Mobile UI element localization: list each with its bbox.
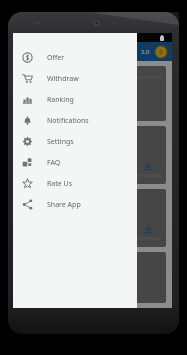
staticText: downloads	[135, 235, 161, 242]
staticText: Settings	[47, 137, 74, 147]
button[interactable]: downloads	[19, 126, 166, 184]
staticText: Notifications	[47, 116, 89, 126]
button[interactable]: Withdraw	[13, 68, 137, 89]
button[interactable]	[19, 252, 166, 303]
staticText: downloads	[135, 172, 161, 179]
staticText: 2.0	[141, 48, 150, 56]
staticText: Withdraw	[47, 74, 79, 84]
staticText: Offer	[47, 53, 65, 63]
button[interactable]: Share App	[13, 194, 137, 215]
staticText: Ranking	[47, 95, 74, 105]
staticText: FAQ	[47, 158, 61, 168]
button[interactable]: completed	[19, 66, 166, 121]
button[interactable]: Settings	[13, 131, 137, 152]
button[interactable]: Coins	[154, 45, 168, 59]
staticText: completed	[136, 74, 161, 81]
button[interactable]: Rate Us	[13, 173, 137, 194]
staticText: Rate Us	[47, 179, 73, 189]
button[interactable]: FAQ	[13, 152, 137, 173]
button[interactable]: Notifications	[13, 110, 137, 131]
staticText: Share App	[47, 200, 81, 210]
button[interactable]: Ranking	[13, 89, 137, 110]
button[interactable]: downloads	[19, 189, 166, 247]
button[interactable]: Offer	[13, 47, 137, 68]
